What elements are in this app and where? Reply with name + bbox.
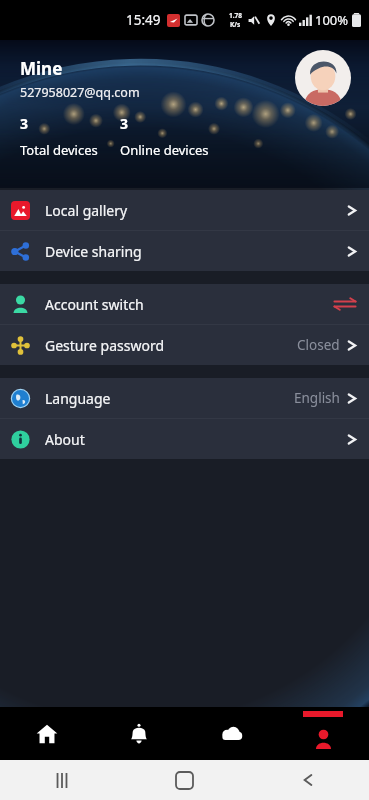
button[interactable]: Mine — [277, 707, 369, 760]
staticText: 15:49 — [126, 11, 161, 29]
staticText: 527958027@qq.com — [20, 84, 140, 101]
button[interactable]: About — [0, 419, 369, 459]
staticText: 3 — [20, 114, 29, 133]
staticText: English — [294, 389, 340, 407]
button[interactable]: Language — [0, 378, 369, 418]
staticText: Account switch — [45, 295, 144, 314]
button[interactable]: Home — [0, 707, 93, 760]
button[interactable]: Local gallery — [0, 190, 369, 230]
staticText: Gesture password — [45, 336, 164, 355]
button[interactable]: Switch account — [333, 295, 357, 313]
staticText: Local gallery — [45, 201, 128, 220]
staticText: Online devices — [120, 141, 209, 159]
staticText: Total devices — [20, 141, 98, 159]
staticText: Device sharing — [45, 242, 142, 261]
button[interactable]: Device sharing — [0, 231, 369, 271]
button[interactable]: Gesture password — [0, 325, 369, 365]
button[interactable]: Cloud — [185, 707, 277, 760]
staticText: 1.78 — [229, 11, 242, 20]
button[interactable]: Account switch — [0, 284, 369, 324]
staticText: Closed — [297, 336, 340, 354]
staticText: About — [45, 430, 85, 449]
staticText: K/s — [230, 20, 241, 29]
staticText: Language — [45, 389, 111, 408]
button[interactable]: Profile photo — [295, 50, 351, 106]
staticText: Mine — [20, 57, 63, 80]
button[interactable]: Alerts — [93, 707, 185, 760]
staticText: 100% — [315, 11, 349, 29]
staticText: 3 — [120, 114, 129, 133]
